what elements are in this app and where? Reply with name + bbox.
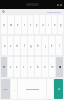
- button[interactable]: ?123: [1, 79, 10, 99]
- button[interactable]: n: [42, 57, 48, 77]
- button[interactable]: m: [49, 57, 55, 77]
- staticText: t: [30, 23, 31, 27]
- button[interactable]: Enter: [54, 79, 63, 99]
- staticText: u: [42, 23, 44, 27]
- button[interactable]: y: [34, 15, 39, 34]
- button[interactable]: Space: [18, 79, 46, 99]
- button[interactable]: a: [2, 36, 7, 55]
- staticText: ?123: [3, 88, 8, 91]
- staticText: g: [30, 44, 32, 48]
- button[interactable]: z: [8, 57, 13, 77]
- staticText: ,: [14, 87, 15, 91]
- staticText: k: [51, 44, 53, 48]
- staticText: r: [24, 23, 26, 27]
- button[interactable]: p: [58, 15, 63, 34]
- staticText: p: [60, 23, 62, 27]
- staticText: j: [45, 44, 46, 48]
- staticText: h: [37, 44, 39, 48]
- button[interactable]: u: [40, 15, 45, 34]
- button[interactable]: b: [35, 57, 41, 77]
- staticText: m: [51, 65, 54, 69]
- button[interactable]: t: [28, 15, 33, 34]
- button[interactable]: w: [8, 15, 14, 34]
- staticText: .: [50, 87, 51, 91]
- staticText: a: [4, 44, 6, 48]
- button[interactable]: x: [14, 57, 20, 77]
- button[interactable]: f: [21, 36, 27, 55]
- button[interactable]: h: [35, 36, 41, 55]
- staticText: s: [10, 44, 12, 48]
- button[interactable]: j: [42, 36, 48, 55]
- staticText: o: [54, 23, 56, 27]
- button[interactable]: q: [1, 15, 7, 34]
- staticText: i: [48, 23, 49, 27]
- staticText: c: [23, 65, 25, 69]
- button[interactable]: Thermostat: [46, 10, 62, 13]
- button[interactable]: c: [21, 57, 27, 77]
- button[interactable]: Shift: [1, 57, 7, 77]
- button[interactable]: Voice input: [2, 10, 5, 13]
- button[interactable]: r: [22, 15, 27, 34]
- staticText: q: [3, 23, 5, 27]
- staticText: f: [24, 44, 25, 48]
- staticText: x: [16, 65, 18, 69]
- staticText: d: [16, 44, 18, 48]
- staticText: Thermostat: [47, 10, 61, 13]
- button[interactable]: l: [56, 36, 62, 55]
- staticText: l: [59, 44, 60, 48]
- button[interactable]: i: [46, 15, 51, 34]
- button[interactable]: k: [49, 36, 55, 55]
- staticText: b: [37, 65, 39, 69]
- button[interactable]: o: [52, 15, 57, 34]
- button[interactable]: Backspace: [56, 57, 63, 77]
- button[interactable]: s: [8, 36, 13, 55]
- button[interactable]: g: [28, 36, 34, 55]
- staticText: e: [17, 23, 19, 27]
- staticText: w: [10, 23, 13, 27]
- staticText: v: [30, 65, 32, 69]
- staticText: n: [44, 65, 46, 69]
- button[interactable]: e: [15, 15, 21, 34]
- staticText: z: [10, 65, 12, 69]
- staticText: y: [36, 23, 38, 27]
- button[interactable]: v: [28, 57, 34, 77]
- button[interactable]: d: [14, 36, 20, 55]
